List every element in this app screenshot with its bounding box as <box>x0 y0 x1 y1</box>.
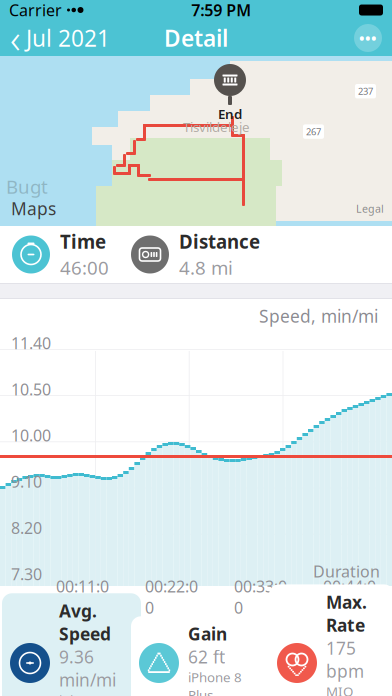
staticText: MIO GLOBAL L <box>326 682 375 696</box>
staticText: Distance <box>179 229 260 254</box>
staticText: 00:22:00 <box>145 576 198 618</box>
staticText: 267 <box>306 125 321 138</box>
staticText: 8.20 <box>11 517 42 538</box>
staticText: 00:33:00 <box>234 576 287 618</box>
staticText: Detail <box>164 23 228 53</box>
staticText: 10.50 <box>11 379 51 400</box>
staticText: iPhone 8 Plus <box>188 668 242 696</box>
staticText: 7.30 <box>11 563 42 585</box>
button[interactable]: Avg. Speed <box>2 593 141 696</box>
staticText: 00:44:00 <box>323 576 376 618</box>
staticText: Legal <box>356 201 384 216</box>
staticText: Avg. Speed <box>59 599 111 645</box>
staticText: 175 bpm <box>326 636 364 682</box>
staticText: Jul 2021 <box>26 23 110 53</box>
staticText: Speed, min/mi <box>259 304 378 327</box>
staticText: 7:59 PM <box>191 0 251 21</box>
staticText: 237 <box>358 85 373 97</box>
staticText: ‹ <box>10 11 21 64</box>
staticText: 46:00 <box>60 255 109 280</box>
staticText: Maps <box>11 197 56 220</box>
staticText: 11.40 <box>11 332 51 354</box>
staticText: Bugt <box>6 174 48 199</box>
staticText: ••• <box>359 28 377 48</box>
button[interactable]: ‹ <box>0 20 120 56</box>
button[interactable]: More options <box>354 24 382 52</box>
staticText: 9.36 min/mi <box>59 645 116 691</box>
button[interactable]: Max. Rate <box>269 584 392 696</box>
button[interactable]: Gain <box>131 616 279 696</box>
staticText: 00:11:00 <box>56 576 109 618</box>
staticText: 10.00 <box>11 425 51 446</box>
staticText: Tisvildeleje <box>183 118 250 136</box>
staticText: 4.8 mi <box>179 255 233 280</box>
staticText: 62 ft <box>188 645 225 668</box>
staticText: 9.10 <box>11 471 42 492</box>
staticText: Gain <box>188 622 227 645</box>
staticText: Duration <box>313 561 380 582</box>
staticText: iPhone 8 Plus <box>59 691 113 696</box>
staticText: Carrier <box>9 0 62 21</box>
staticText: End <box>218 105 242 123</box>
button[interactable]: Distance <box>131 221 260 288</box>
button[interactable]: Time <box>0 221 109 288</box>
staticText: Max. Rate <box>326 590 367 636</box>
staticText: Time <box>60 229 106 254</box>
